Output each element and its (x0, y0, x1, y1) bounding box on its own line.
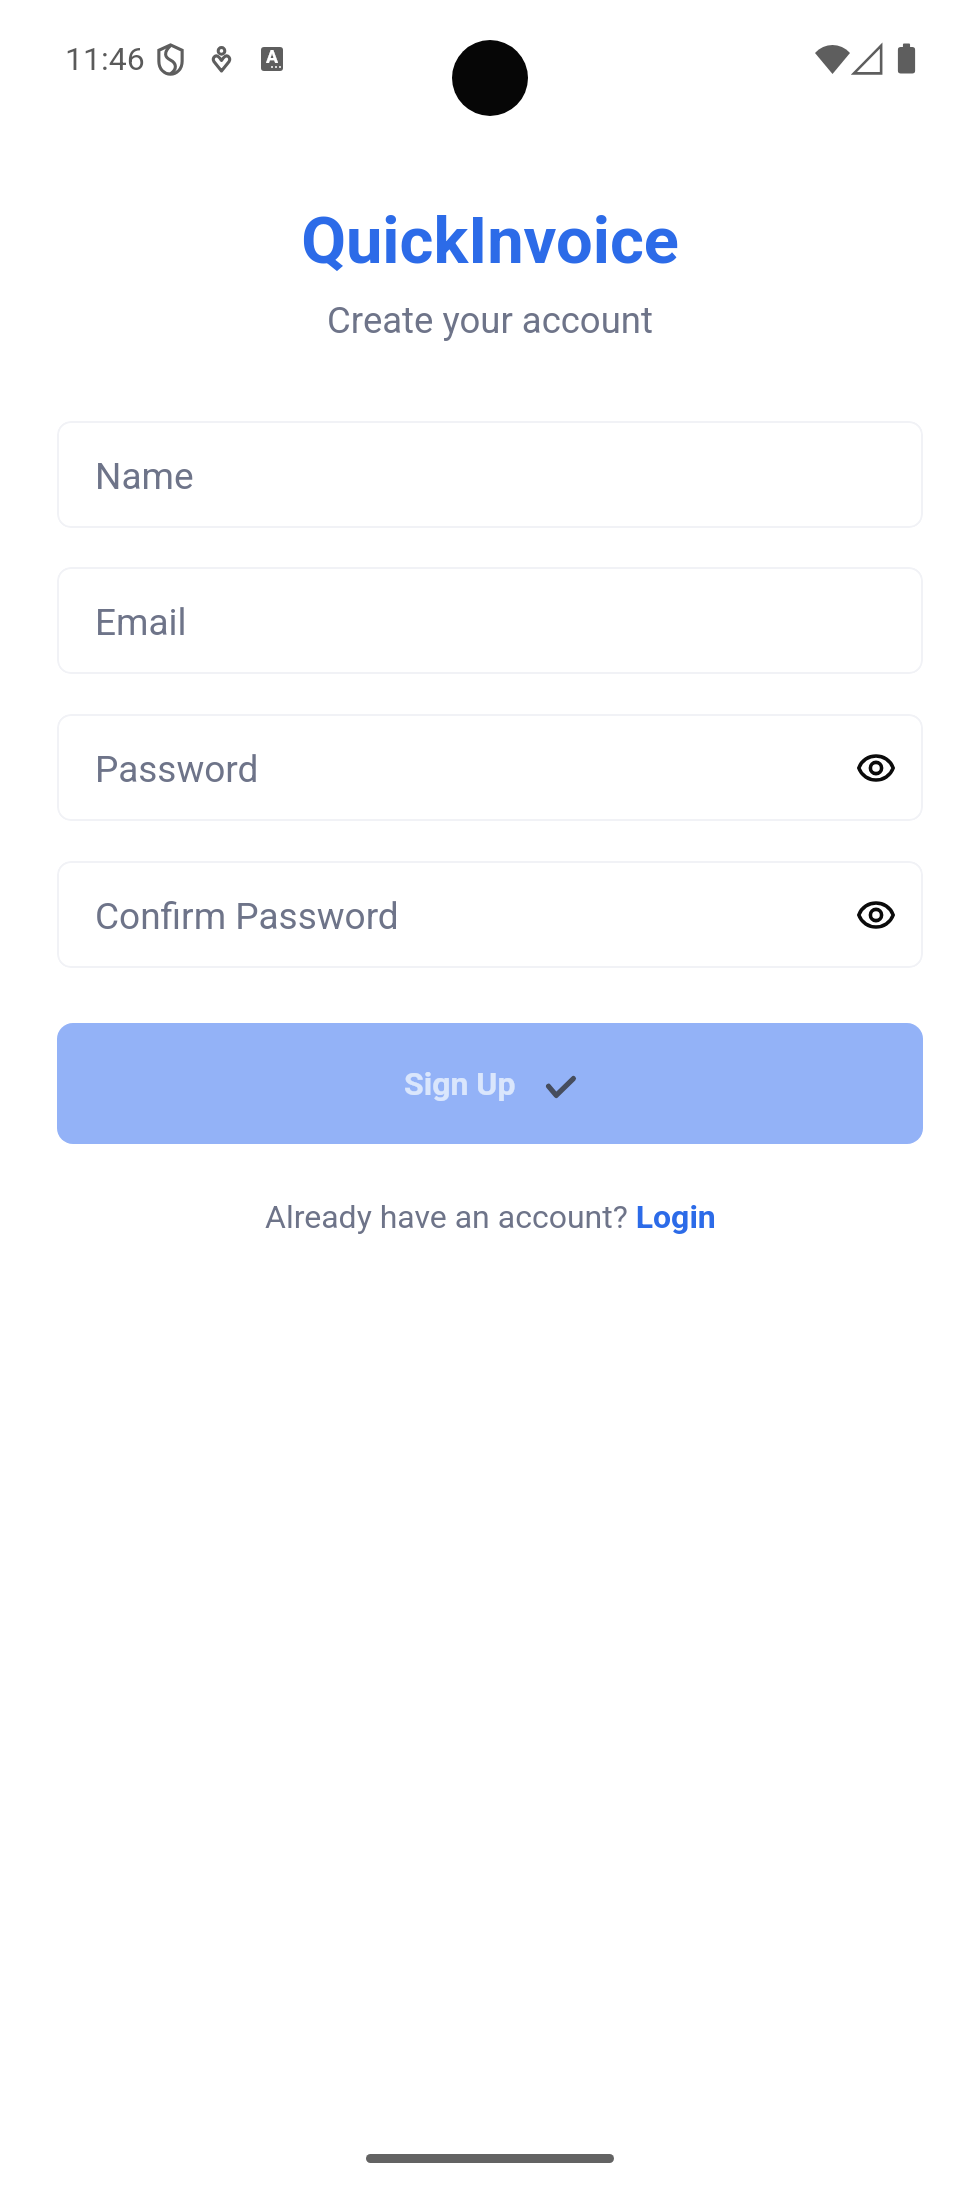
staticText: 11:46 (65, 40, 145, 78)
button[interactable]: Name (57, 421, 923, 528)
staticText: Email (95, 601, 187, 644)
button[interactable]: Show password (848, 740, 904, 796)
button[interactable]: Confirm Password (57, 861, 923, 968)
staticText: QuickInvoice (0, 203, 980, 279)
staticText: Create your account (0, 299, 980, 342)
button[interactable]: Password (57, 714, 923, 821)
button[interactable]: Already have an account? Login (261, 1192, 720, 1242)
staticText: Password (95, 748, 259, 791)
staticText: Confirm Password (95, 895, 399, 938)
button[interactable]: Sign Up (57, 1023, 923, 1144)
staticText: Name (95, 455, 194, 498)
button[interactable]: Show password (848, 887, 904, 943)
staticText: A (266, 47, 279, 67)
button[interactable]: Email (57, 567, 923, 674)
staticText: Sign Up (404, 1065, 516, 1103)
